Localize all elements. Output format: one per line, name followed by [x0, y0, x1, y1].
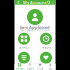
button[interactable]: Billing	[15, 52, 32, 68]
staticText: My Account	[23, 0, 47, 5]
staticText: History	[41, 46, 50, 49]
button[interactable]: Chat	[35, 64, 45, 70]
button[interactable]: Back	[16, 0, 21, 5]
button[interactable]: Cards	[25, 64, 35, 70]
button[interactable]: Home	[14, 64, 25, 70]
button[interactable]: Search	[46, 0, 51, 5]
staticText: Billing	[19, 65, 29, 68]
staticText: Home	[16, 67, 24, 70]
staticText: Me	[48, 67, 52, 70]
button[interactable]: More options	[51, 0, 55, 5]
staticText: Cards	[26, 67, 33, 70]
staticText: Services	[19, 46, 29, 49]
staticText: Jane Appleseed	[20, 25, 50, 30]
button[interactable]: Support	[37, 52, 54, 68]
staticText: jane@appleseed.com	[20, 28, 49, 32]
button[interactable]: Services	[15, 33, 32, 49]
staticText: Chat	[37, 67, 43, 70]
button[interactable]: Me	[45, 64, 55, 70]
staticText: Support	[40, 65, 51, 68]
button[interactable]: History	[37, 33, 54, 49]
